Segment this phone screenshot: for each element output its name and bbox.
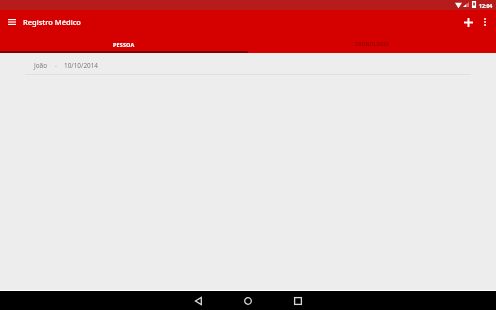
button[interactable]: João <box>0 55 496 74</box>
staticText: Registro Médico <box>23 17 81 27</box>
button[interactable]: Menu <box>5 12 19 32</box>
staticText: João <box>34 61 48 70</box>
button[interactable]: PESSOA <box>0 36 248 53</box>
button[interactable]: Back <box>183 291 213 310</box>
staticText: 10/10/2014 <box>64 61 98 70</box>
button[interactable]: CRONOLOGIA <box>248 36 496 53</box>
button[interactable]: Recent apps <box>283 291 313 310</box>
button[interactable]: Add <box>460 12 476 32</box>
staticText: - <box>55 62 57 69</box>
staticText: CRONOLOGIA <box>355 41 390 48</box>
button[interactable]: Home <box>233 291 263 310</box>
staticText: PESSOA <box>113 41 135 48</box>
staticText: 12:04 <box>479 2 493 9</box>
button[interactable]: More options <box>477 12 492 32</box>
